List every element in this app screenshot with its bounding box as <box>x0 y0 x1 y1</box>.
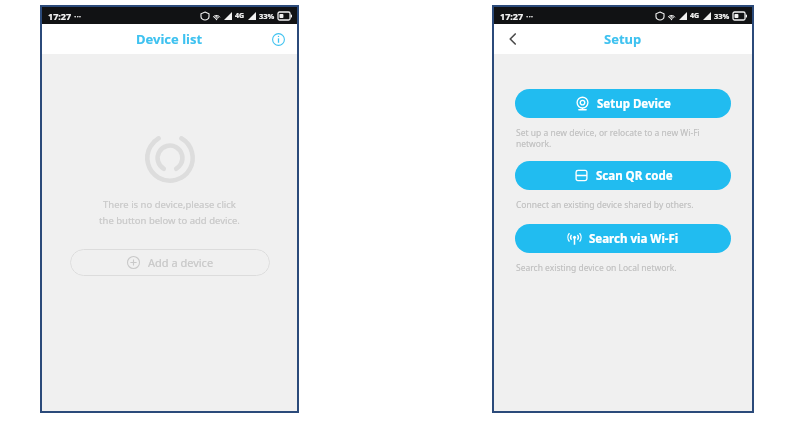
staticText: Connect an existing device shared by oth… <box>516 199 694 211</box>
staticText: Search existing device on Local network. <box>516 262 677 274</box>
staticText: Scan QR code <box>596 168 673 184</box>
button[interactable]: Back <box>502 28 524 50</box>
button[interactable]: Search via Wi-Fi <box>515 224 731 253</box>
button[interactable]: Information <box>268 29 288 49</box>
staticText: Device list <box>136 30 203 48</box>
button[interactable]: Scan QR code <box>515 161 731 190</box>
staticText: There is no device,please click <box>103 198 236 211</box>
staticText: Setup <box>604 30 642 48</box>
staticText: ··· <box>74 10 82 22</box>
staticText: 17:27 <box>500 10 524 22</box>
staticText: Setup Device <box>597 96 671 112</box>
staticText: Set up a new device, or relocate to a ne… <box>516 127 700 149</box>
staticText: the button below to add device. <box>99 214 240 227</box>
staticText: 33% <box>259 11 275 21</box>
button[interactable]: Add a device <box>70 249 270 276</box>
staticText: Add a device <box>148 255 214 270</box>
staticText: 17:27 <box>48 10 72 22</box>
staticText: ··· <box>526 10 534 22</box>
button[interactable]: Setup Device <box>515 89 731 118</box>
staticText: 4G <box>690 11 700 21</box>
staticText: 4G <box>235 11 245 21</box>
staticText: Search via Wi-Fi <box>589 231 679 247</box>
staticText: 33% <box>714 11 730 21</box>
